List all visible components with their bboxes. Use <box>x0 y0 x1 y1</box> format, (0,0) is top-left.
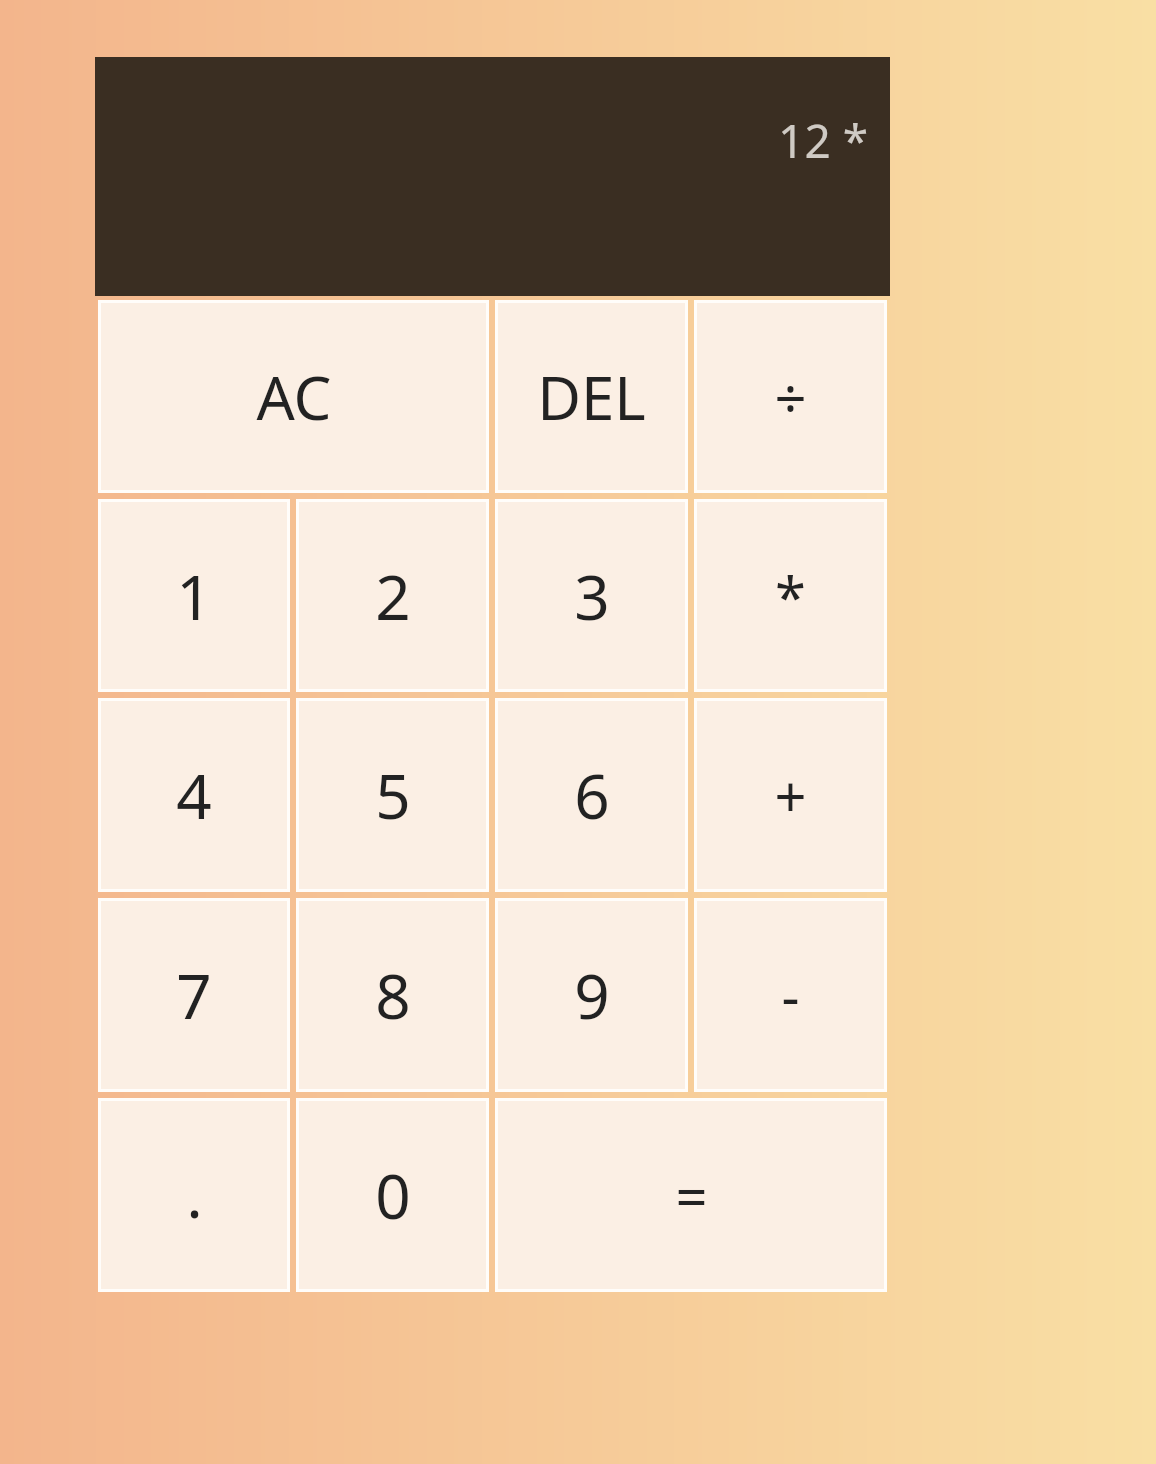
button[interactable]: 1 <box>101 502 287 689</box>
button[interactable]: 5 <box>299 701 486 889</box>
button[interactable]: 2 <box>299 502 486 689</box>
button[interactable]: AC <box>101 303 486 490</box>
staticText: DEL <box>537 356 646 438</box>
staticText: - <box>781 957 800 1033</box>
button[interactable]: 8 <box>299 901 486 1089</box>
button[interactable]: 3 <box>498 502 685 689</box>
staticText: AC <box>256 356 332 438</box>
staticText: 8 <box>375 953 411 1037</box>
staticText: . <box>186 1154 203 1236</box>
button[interactable]: 0 <box>299 1101 486 1289</box>
button[interactable]: . <box>101 1101 287 1289</box>
button[interactable]: 6 <box>498 701 685 889</box>
staticText: 2 <box>375 554 411 638</box>
staticText: * <box>775 558 806 634</box>
button[interactable]: + <box>697 701 884 889</box>
button[interactable]: ÷ <box>697 303 884 490</box>
button[interactable]: * <box>697 502 884 689</box>
staticText: ÷ <box>774 359 807 435</box>
staticText: 0 <box>375 1153 411 1237</box>
staticText: 9 <box>574 953 610 1037</box>
button[interactable]: 12 * <box>95 57 890 296</box>
staticText: + <box>774 757 807 833</box>
button[interactable]: DEL <box>498 303 685 490</box>
button[interactable]: 7 <box>101 901 287 1089</box>
staticText: 7 <box>176 953 212 1037</box>
staticText: 1 <box>176 554 212 638</box>
button[interactable]: - <box>697 901 884 1089</box>
staticText: = <box>675 1157 708 1233</box>
button[interactable]: 4 <box>101 701 287 889</box>
button[interactable]: 9 <box>498 901 685 1089</box>
staticText: 4 <box>176 753 212 837</box>
staticText: 5 <box>375 753 411 837</box>
staticText: 6 <box>574 753 610 837</box>
staticText: 3 <box>574 554 610 638</box>
staticText: 12 * <box>778 109 868 172</box>
button[interactable]: = <box>498 1101 884 1289</box>
